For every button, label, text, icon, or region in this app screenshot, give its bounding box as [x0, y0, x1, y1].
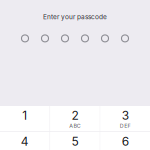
button[interactable]: 3	[100, 106, 150, 131]
staticText: 2	[71, 108, 78, 122]
button[interactable]: 6	[100, 132, 150, 150]
staticText: ABC	[69, 122, 81, 129]
staticText: 6	[122, 134, 129, 148]
button[interactable]: 4	[0, 132, 50, 150]
staticText: 1	[22, 108, 27, 122]
staticText: 3	[122, 108, 129, 122]
button[interactable]: 2	[50, 106, 100, 131]
staticText: 4	[21, 134, 29, 148]
button[interactable]: 1	[0, 106, 50, 131]
staticText: Enter your passcode	[43, 13, 107, 21]
staticText: DEF	[120, 122, 130, 129]
staticText: 5	[71, 134, 78, 148]
button[interactable]: 5	[50, 132, 100, 150]
